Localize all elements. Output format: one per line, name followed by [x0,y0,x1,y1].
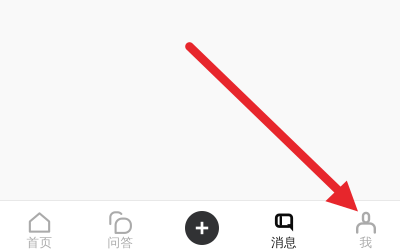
staticText: 问答 [107,235,133,250]
button[interactable]: 我 [326,201,400,250]
button[interactable]: 首页 [0,201,79,250]
button[interactable]: Compose [185,211,219,245]
staticText: 首页 [26,235,52,250]
button[interactable]: 消息 [244,201,324,250]
staticText: 消息 [271,235,297,250]
button[interactable]: 问答 [80,201,160,250]
staticText: 我 [359,235,372,250]
